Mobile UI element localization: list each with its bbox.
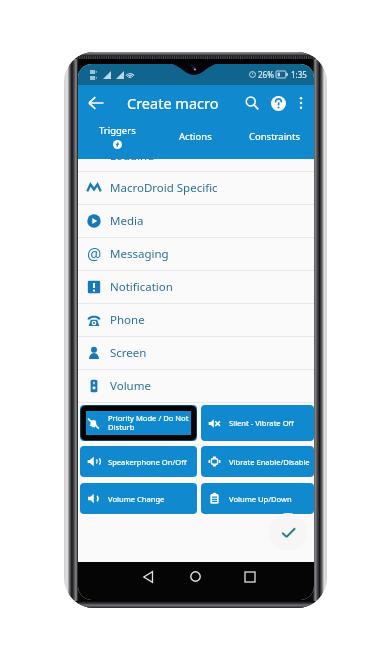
staticText: @	[87, 243, 102, 265]
button[interactable]: Priority Mode / Do Not Disturb	[80, 405, 197, 441]
staticText: Screen	[110, 345, 147, 361]
button[interactable]: Notification	[78, 271, 314, 303]
button[interactable]: Media	[78, 205, 314, 237]
staticText: Notification	[110, 279, 173, 295]
staticText: Volume	[110, 378, 151, 394]
staticText: 26%	[258, 69, 274, 80]
button[interactable]: Back	[134, 563, 161, 590]
button[interactable]: Search	[239, 90, 265, 116]
button[interactable]: Speakerphone On/Off	[80, 446, 197, 477]
button[interactable]: More options	[291, 93, 311, 113]
staticText: Priority Mode / Do Not Disturb	[108, 413, 189, 433]
button[interactable]: Constraints	[235, 121, 314, 159]
staticText: Volume Change	[108, 494, 165, 504]
button[interactable]: Vibrate Enable/Disable	[201, 446, 314, 477]
staticText: Create macro	[127, 93, 219, 113]
staticText: Silent - Vibrate Off	[229, 418, 294, 428]
staticText: Vibrate Enable/Disable	[229, 457, 310, 467]
staticText: Constraints	[249, 130, 300, 143]
staticText: Volume Up/Down	[229, 494, 292, 504]
staticText: Logging	[110, 159, 155, 160]
staticText: Triggers	[99, 124, 136, 137]
staticText: Actions	[179, 130, 212, 143]
button[interactable]: Volume Change	[80, 483, 197, 514]
button[interactable]: MacroDroid Specific	[78, 172, 314, 204]
staticText: Speakerphone On/Off	[108, 457, 187, 467]
button[interactable]: Navigate up	[83, 90, 109, 116]
button[interactable]: Volume Up/Down	[201, 483, 314, 514]
staticText: MacroDroid Specific	[110, 180, 218, 196]
staticText: Messaging	[110, 246, 169, 262]
button[interactable]: Help	[265, 90, 291, 116]
button[interactable]: Recent apps	[236, 563, 263, 590]
button[interactable]: Volume	[78, 370, 314, 402]
button[interactable]: Phone	[78, 304, 314, 336]
staticText: Phone	[110, 312, 145, 328]
staticText: 1:35	[291, 69, 307, 80]
button[interactable]: Confirm	[269, 513, 307, 551]
button[interactable]: @	[78, 238, 314, 270]
button[interactable]: Screen	[78, 337, 314, 369]
button[interactable]: Silent - Vibrate Off	[201, 405, 314, 441]
button[interactable]: Home	[182, 563, 209, 590]
button[interactable]: Actions	[156, 121, 235, 159]
button[interactable]: Triggers	[78, 121, 156, 159]
staticText: Media	[110, 213, 144, 229]
